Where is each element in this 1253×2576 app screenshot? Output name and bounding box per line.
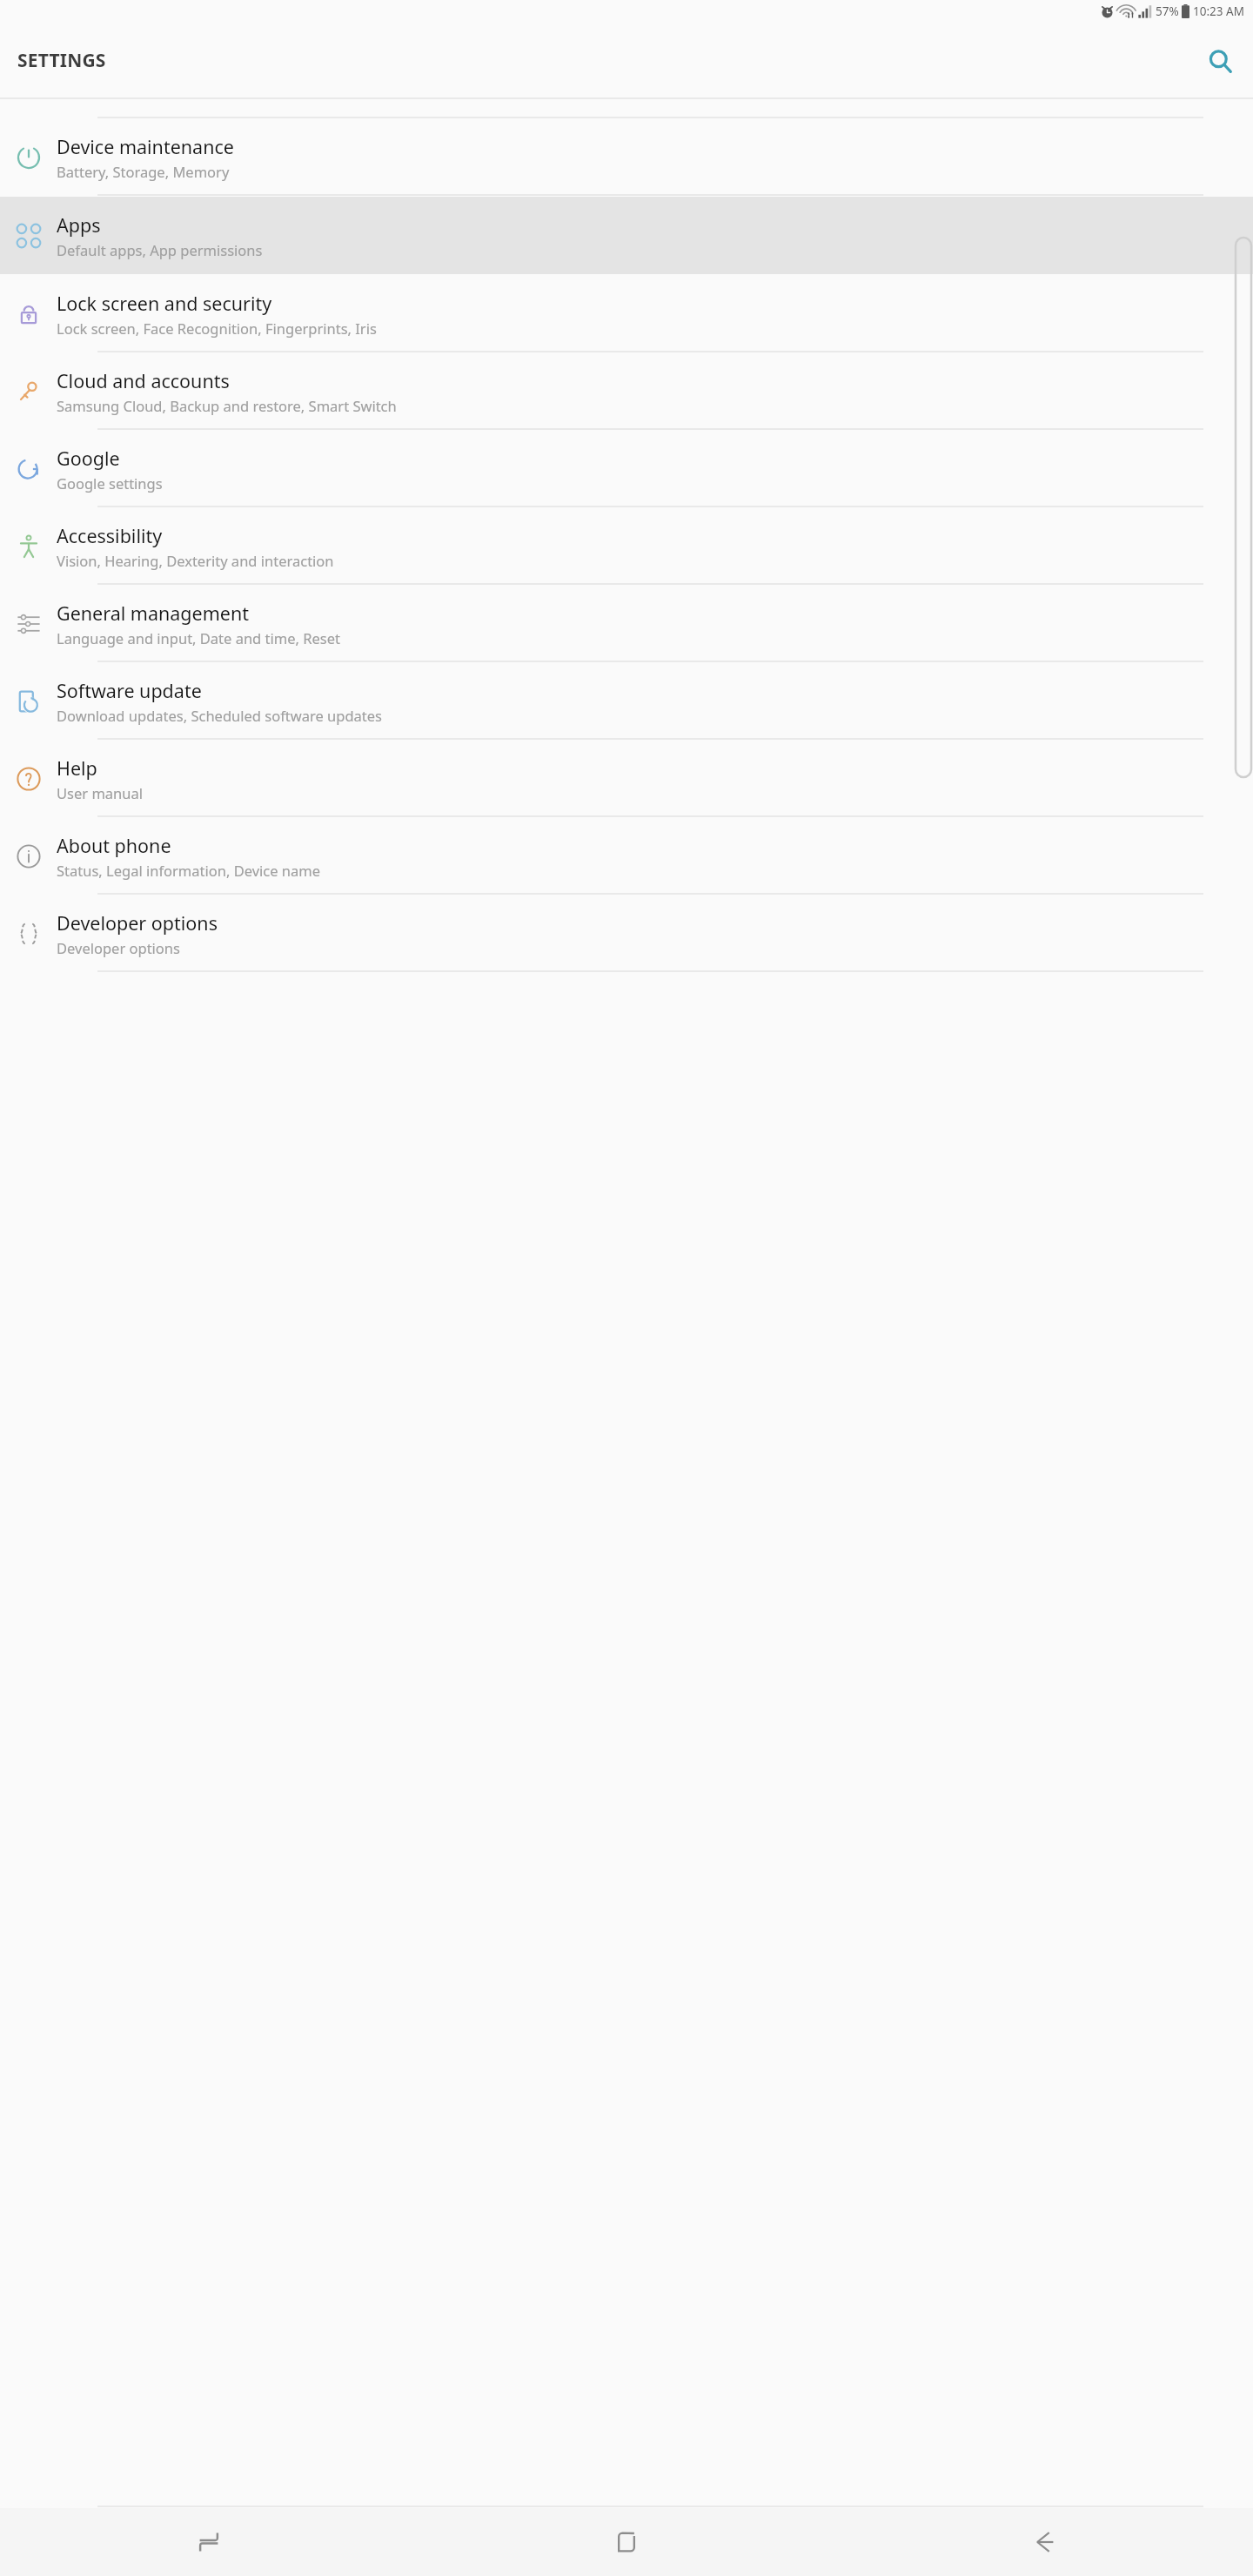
staticText: About phone: [57, 833, 171, 858]
staticText: Samsung Cloud, Backup and restore, Smart…: [57, 396, 397, 415]
staticText: Download updates, Scheduled software upd…: [57, 706, 382, 725]
staticText: 57%: [1156, 3, 1179, 19]
staticText: Cloud and accounts: [57, 368, 230, 393]
staticText: Developer options: [57, 938, 180, 957]
button[interactable]: Home: [418, 2508, 835, 2576]
staticText: Developer options: [57, 910, 218, 936]
staticText: Lock screen, Face Recognition, Fingerpri…: [57, 319, 377, 338]
staticText: Help: [57, 755, 97, 781]
staticText: Google settings: [57, 473, 163, 493]
button[interactable]: About phone: [0, 818, 1253, 894]
button[interactable]: General management: [0, 586, 1253, 661]
staticText: General management: [57, 600, 249, 626]
button[interactable]: Software update: [0, 663, 1253, 739]
button[interactable]: Help: [0, 741, 1253, 816]
button[interactable]: Lock screen and security: [0, 276, 1253, 352]
staticText: User manual: [57, 783, 143, 802]
button[interactable]: Recents: [0, 2508, 418, 2576]
staticText: 10:23 AM: [1193, 3, 1244, 19]
button[interactable]: Back: [835, 2508, 1253, 2576]
button[interactable]: Accessibility: [0, 508, 1253, 584]
staticText: Language and input, Date and time, Reset: [57, 628, 340, 647]
staticText: Accessibility: [57, 523, 163, 548]
staticText: Lock screen and security: [57, 291, 272, 316]
staticText: Device maintenance: [57, 134, 234, 159]
button[interactable]: Google: [0, 431, 1253, 506]
button[interactable]: Search: [1199, 40, 1241, 82]
staticText: SETTINGS: [17, 48, 106, 73]
staticText: Software update: [57, 678, 202, 703]
button[interactable]: Cloud and accounts: [0, 353, 1253, 429]
button[interactable]: Developer options: [0, 896, 1253, 971]
staticText: Status, Legal information, Device name: [57, 861, 321, 880]
button[interactable]: Apps: [0, 197, 1253, 274]
staticText: Apps: [57, 212, 101, 238]
staticText: Battery, Storage, Memory: [57, 162, 230, 181]
staticText: Default apps, App permissions: [57, 240, 263, 259]
staticText: Google: [57, 446, 120, 471]
staticText: Vision, Hearing, Dexterity and interacti…: [57, 551, 334, 570]
button[interactable]: Device maintenance: [0, 119, 1253, 195]
